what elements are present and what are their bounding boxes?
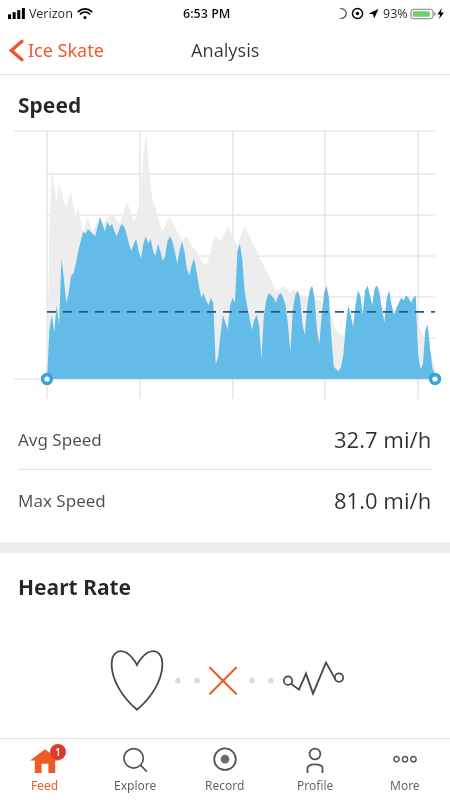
staticText: Verizon: [29, 5, 73, 22]
staticText: Record: [205, 777, 245, 793]
staticText: Ice Skate: [28, 38, 104, 63]
staticText: Max Speed: [18, 489, 106, 512]
staticText: 32.7 mi/h: [334, 424, 432, 454]
button[interactable]: More: [360, 739, 450, 800]
button[interactable]: 1: [0, 739, 90, 800]
button[interactable]: Avg Speed: [0, 409, 450, 469]
staticText: Avg Speed: [18, 428, 102, 451]
staticText: 1: [55, 745, 61, 759]
button[interactable]: Explore: [90, 739, 180, 800]
staticText: Heart Rate: [18, 573, 132, 602]
staticText: Explore: [114, 777, 157, 793]
staticText: Speed: [18, 91, 82, 120]
staticText: Analysis: [191, 38, 260, 63]
staticText: 6:53 PM: [183, 5, 231, 22]
button[interactable]: Record: [180, 739, 270, 800]
button[interactable]: Ice Skate: [0, 32, 118, 69]
button[interactable]: Max Speed: [0, 470, 450, 530]
staticText: Profile: [297, 777, 334, 793]
staticText: 81.0 mi/h: [334, 485, 432, 515]
button[interactable]: Speed chart: [0, 131, 450, 409]
staticText: More: [390, 777, 420, 793]
staticText: 93%: [383, 5, 408, 22]
staticText: Feed: [31, 777, 59, 793]
button[interactable]: Profile: [270, 739, 360, 800]
